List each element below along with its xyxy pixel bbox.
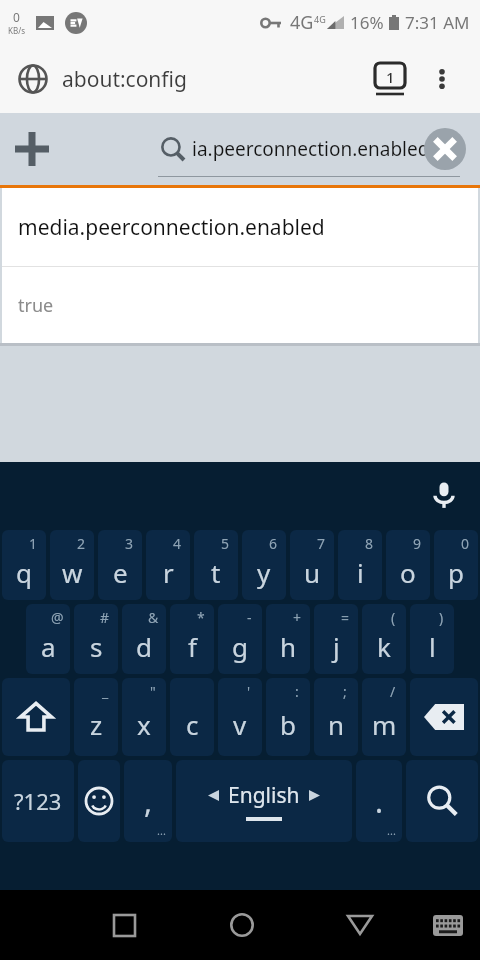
button[interactable]: Clear	[422, 126, 468, 172]
staticText: ...	[157, 823, 166, 838]
button[interactable]: Comma	[124, 760, 172, 842]
button[interactable]: Search	[406, 760, 478, 842]
staticText: s	[90, 629, 103, 664]
staticText: t	[211, 555, 221, 590]
staticText: d	[136, 629, 152, 664]
staticText: m	[372, 707, 397, 742]
staticText: &	[148, 608, 159, 627]
button[interactable]: Voice input	[422, 473, 466, 517]
button[interactable]: Back	[332, 897, 388, 953]
button[interactable]: Symbols	[2, 760, 74, 842]
staticText: 0	[13, 9, 20, 25]
staticText: 5	[221, 534, 230, 553]
staticText: 0	[461, 534, 470, 553]
staticText: n	[328, 707, 345, 742]
staticText: z	[90, 707, 103, 742]
staticText: 1	[29, 534, 38, 553]
button[interactable]: Recents	[96, 897, 152, 953]
staticText: j	[333, 629, 340, 664]
staticText: b	[280, 707, 296, 742]
staticText: about:config	[62, 65, 187, 94]
button[interactable]: Switch keyboard	[422, 899, 474, 951]
button[interactable]: 8	[338, 530, 382, 600]
staticText: ...	[387, 823, 396, 838]
button[interactable]: Backspace	[410, 678, 478, 756]
button[interactable]: Shift	[2, 678, 70, 756]
staticText: "	[150, 682, 156, 701]
button[interactable]: &	[122, 604, 166, 674]
staticText: c	[186, 707, 199, 742]
staticText: l	[429, 629, 436, 664]
staticText: x	[137, 707, 151, 742]
button[interactable]: 3	[98, 530, 142, 600]
staticText: 16%	[350, 11, 384, 34]
button[interactable]: :	[266, 678, 310, 756]
button[interactable]: "	[122, 678, 166, 756]
staticText: y	[257, 555, 271, 590]
button[interactable]: (	[362, 604, 406, 674]
staticText: 3	[125, 534, 134, 553]
button[interactable]: /	[362, 678, 406, 756]
button[interactable]: c	[170, 678, 214, 756]
button[interactable]: *	[170, 604, 214, 674]
staticText: v	[233, 707, 247, 742]
button[interactable]: 1	[2, 530, 46, 600]
staticText: 9	[413, 534, 422, 553]
button[interactable]: 0	[434, 530, 478, 600]
staticText: o	[400, 555, 416, 590]
staticText: a	[41, 629, 56, 664]
button[interactable]: More options	[422, 59, 462, 99]
staticText: (	[391, 608, 396, 627]
staticText: #	[100, 608, 110, 627]
button[interactable]: -	[218, 604, 262, 674]
button[interactable]: @	[26, 604, 70, 674]
button[interactable]: 7	[290, 530, 334, 600]
staticText: KB/s	[8, 25, 25, 36]
button[interactable]: =	[314, 604, 358, 674]
staticText: .	[375, 781, 384, 822]
button[interactable]: Tabs	[368, 57, 412, 101]
staticText: 1	[386, 67, 395, 87]
button[interactable]: _	[74, 678, 118, 756]
button[interactable]: Period	[356, 760, 402, 842]
staticText: English	[228, 781, 300, 810]
staticText: 4	[173, 534, 182, 553]
staticText: '	[247, 682, 251, 701]
staticText: w	[62, 555, 83, 590]
button[interactable]: #	[74, 604, 118, 674]
staticText: 7:31 AM	[405, 11, 470, 34]
button[interactable]: ;	[314, 678, 358, 756]
button[interactable]: 5	[194, 530, 238, 600]
button[interactable]: +	[266, 604, 310, 674]
staticText: e	[113, 555, 128, 590]
staticText: 6	[269, 534, 278, 553]
staticText: 8	[365, 534, 374, 553]
button[interactable]: 4	[146, 530, 190, 600]
staticText: true	[18, 293, 54, 318]
staticText: 4G	[290, 10, 314, 35]
button[interactable]: true	[2, 267, 478, 343]
staticText: g	[232, 629, 248, 664]
staticText: f	[188, 629, 197, 664]
button[interactable]: media.peerconnection.enabled	[2, 188, 478, 266]
staticText: q	[16, 555, 32, 590]
button[interactable]: 9	[386, 530, 430, 600]
staticText: )	[439, 608, 444, 627]
staticText: =	[341, 608, 350, 627]
staticText: :	[295, 682, 299, 701]
button[interactable]: )	[410, 604, 454, 674]
staticText: k	[377, 629, 391, 664]
button[interactable]: Add	[8, 121, 56, 177]
staticText: +	[293, 608, 302, 627]
button[interactable]: 6	[242, 530, 286, 600]
button[interactable]: 2	[50, 530, 94, 600]
staticText: h	[280, 629, 297, 664]
button[interactable]: Emoji	[78, 760, 120, 842]
staticText: @	[51, 608, 64, 627]
staticText: u	[304, 555, 321, 590]
button[interactable]: Home	[214, 897, 270, 953]
staticText: 2	[77, 534, 86, 553]
button[interactable]: '	[218, 678, 262, 756]
button[interactable]: Space	[176, 760, 352, 842]
staticText: ,	[144, 781, 153, 822]
